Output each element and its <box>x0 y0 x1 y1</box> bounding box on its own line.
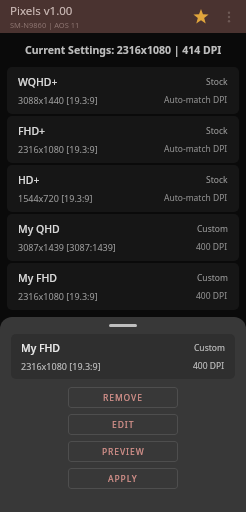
staticText: Auto-match DPI <box>164 192 228 204</box>
staticText: FHD+ <box>18 124 46 138</box>
staticText: 3087x1439 [3087:1439] <box>18 241 116 253</box>
staticText: Custom <box>197 272 228 284</box>
staticText: Current Settings: 2316x1080 | 414 DPI <box>25 43 222 57</box>
button[interactable]: REMOVE <box>68 387 178 408</box>
staticText: WQHD+ <box>18 75 58 89</box>
staticText: EDIT <box>112 419 135 431</box>
staticText: APPLY <box>108 473 138 485</box>
staticText: 2316x1080 [19.3:9] <box>21 360 101 372</box>
staticText: Stock <box>206 125 228 137</box>
staticText: 3088x1440 [19.3:9] <box>18 94 98 106</box>
staticText: My FHD <box>18 271 57 285</box>
button[interactable]: My FHD <box>7 263 239 310</box>
button[interactable]: EDIT <box>68 414 178 435</box>
button[interactable]: PREVIEW <box>68 441 178 462</box>
staticText: 400 DPI <box>193 360 225 372</box>
button[interactable]: WQHD+ <box>7 67 239 114</box>
button[interactable]: APPLY <box>68 468 178 489</box>
staticText: Auto-match DPI <box>164 143 228 155</box>
staticText: My QHD <box>18 222 60 236</box>
staticText: My FHD <box>21 341 60 355</box>
staticText: PREVIEW <box>102 446 145 458</box>
staticText: 1544x720 [19.3:9] <box>18 192 93 204</box>
staticText: REMOVE <box>103 392 143 404</box>
button[interactable]: My QHD <box>7 214 239 261</box>
staticText: 400 DPI <box>196 241 228 253</box>
staticText: 2316x1080 [19.3:9] <box>18 143 98 155</box>
staticText: 2316x1080 [19.3:9] <box>18 290 98 302</box>
button[interactable]: Favorite <box>186 2 216 32</box>
button[interactable]: More options <box>216 4 242 30</box>
staticText: HD+ <box>18 173 40 187</box>
staticText: Custom <box>194 342 225 354</box>
staticText: Stock <box>206 76 228 88</box>
button[interactable]: FHD+ <box>7 116 239 163</box>
staticText: Custom <box>197 223 228 235</box>
button[interactable]: HD+ <box>7 165 239 212</box>
button[interactable]: My FHD <box>11 334 235 379</box>
staticText: Pixels v1.00 <box>10 3 73 19</box>
staticText: Stock <box>206 174 228 186</box>
staticText: SM-N9860 | AOS 11 <box>10 20 80 30</box>
staticText: Auto-match DPI <box>164 94 228 106</box>
staticText: 400 DPI <box>196 290 228 302</box>
